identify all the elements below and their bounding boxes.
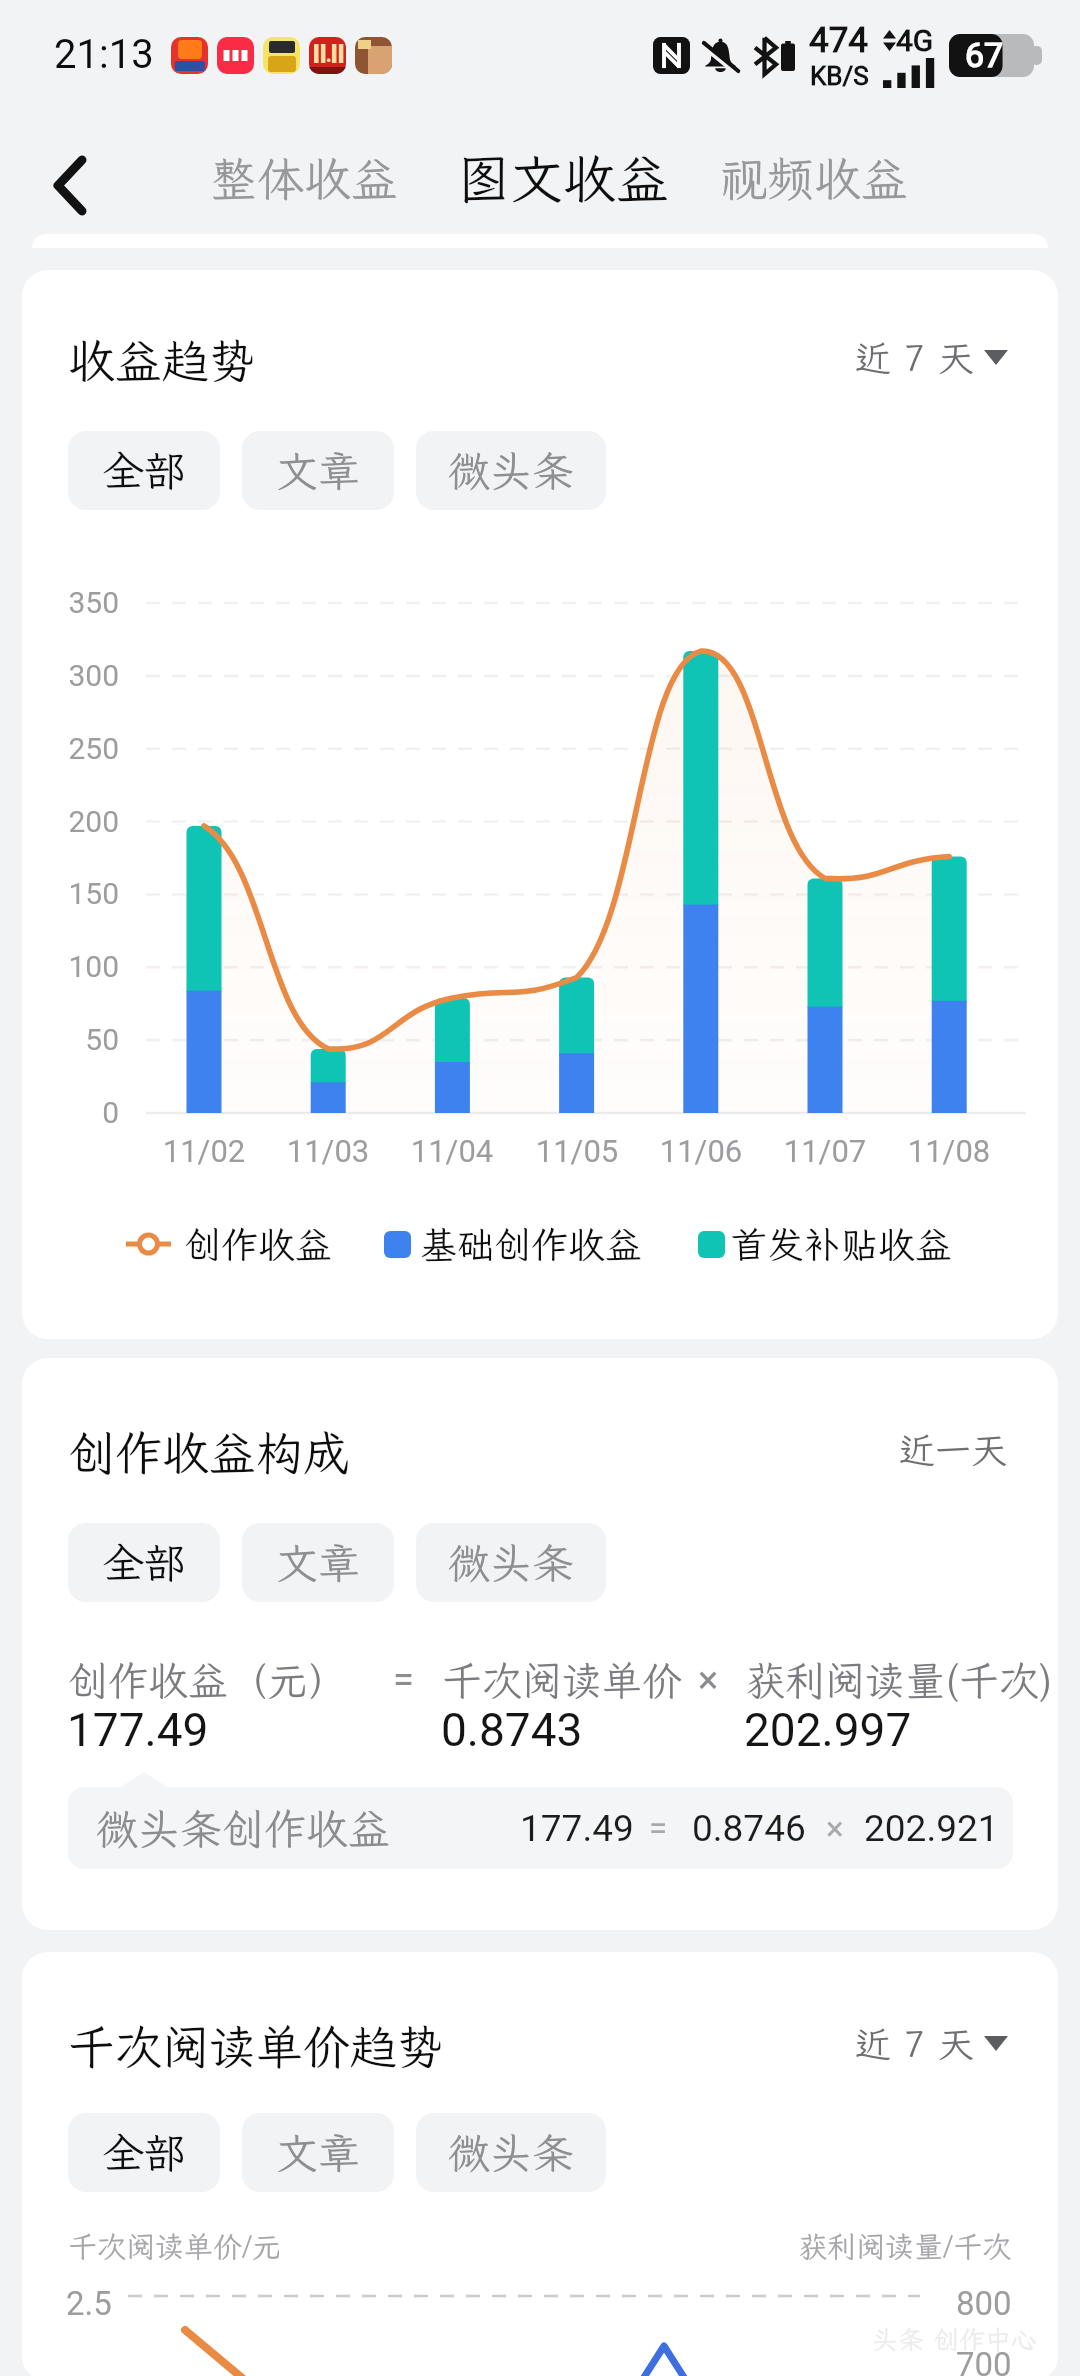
button[interactable]: 图文收益 <box>438 135 688 220</box>
button[interactable]: 近一天 <box>893 1423 1014 1482</box>
staticText: 微头条创作收益 <box>96 1801 391 1856</box>
staticText: 150 <box>22 876 119 911</box>
staticText: 50 <box>22 1022 119 1057</box>
staticText: 图文收益 <box>457 143 669 213</box>
staticText: 头条 创作中心 <box>872 2322 1038 2356</box>
staticText: 700 <box>956 2345 1012 2376</box>
button[interactable]: 文章 <box>242 431 394 510</box>
staticText: 近 7 天 <box>855 334 974 381</box>
staticText: 202.921 <box>864 1807 999 1850</box>
staticText: 11/02 <box>134 1133 274 1169</box>
staticText: × <box>698 1658 719 1703</box>
staticText: 0 <box>22 1095 119 1130</box>
staticText: 474 <box>809 20 869 61</box>
staticText: 近一天 <box>899 1426 1008 1473</box>
staticText: 创作收益 <box>184 1220 332 1269</box>
staticText: 千次阅读单价/元 <box>68 2227 282 2265</box>
staticText: 千次阅读单价趋势 <box>68 2015 444 2077</box>
staticText: 整体收益 <box>210 147 398 209</box>
staticText: 千次阅读单价 <box>442 1654 682 1707</box>
button[interactable]: 全部 <box>68 1523 220 1602</box>
staticText: 0.8746 <box>692 1807 806 1850</box>
staticText: = <box>393 1658 414 1703</box>
staticText: 创作收益构成 <box>68 1421 350 1483</box>
staticText: 250 <box>22 731 119 766</box>
staticText: 微头条 <box>448 443 575 498</box>
button[interactable]: Back <box>15 130 125 240</box>
staticText: KB/S <box>810 61 869 91</box>
staticText: 获利阅读量(千次) <box>745 1654 1053 1707</box>
staticText: = <box>649 1809 668 1848</box>
button[interactable]: 近 7 天 <box>849 2017 1014 2076</box>
staticText: 全部 <box>102 2125 187 2180</box>
staticText: 文章 <box>276 2125 361 2180</box>
staticText: 视频收益 <box>720 147 908 209</box>
staticText: 11/03 <box>258 1133 398 1169</box>
button[interactable]: 全部 <box>68 2113 220 2192</box>
staticText: 全部 <box>102 443 187 498</box>
button[interactable]: 视频收益 <box>706 140 921 215</box>
staticText: 11/06 <box>631 1133 771 1169</box>
staticText: 基础创作收益 <box>420 1220 642 1269</box>
staticText: 11/08 <box>879 1133 1019 1169</box>
staticText: 300 <box>22 658 119 693</box>
staticText: 0.8743 <box>441 1703 583 1757</box>
staticText: 200 <box>22 804 119 839</box>
staticText: 获利阅读量/千次 <box>798 2227 1012 2265</box>
staticText: 收益趋势 <box>68 329 256 391</box>
staticText: 177.49 <box>520 1807 634 1850</box>
staticText: 21:13 <box>54 31 154 78</box>
staticText: 文章 <box>276 443 361 498</box>
button[interactable]: 文章 <box>242 2113 394 2192</box>
staticText: 202.997 <box>744 1703 912 1757</box>
button[interactable]: 整体收益 <box>196 140 411 215</box>
staticText: 800 <box>956 2284 1012 2323</box>
staticText: 创作收益（元） <box>68 1654 348 1707</box>
staticText: 100 <box>22 949 119 984</box>
staticText: 350 <box>22 585 119 620</box>
staticText: 11/07 <box>755 1133 895 1169</box>
button[interactable]: 微头条创作收益 <box>68 1787 1013 1869</box>
staticText: 近 7 天 <box>855 2020 974 2067</box>
staticText: 67 <box>965 35 1004 75</box>
button[interactable]: 近 7 天 <box>849 331 1014 390</box>
staticText: 2.5 <box>66 2284 112 2323</box>
staticText: 微头条 <box>448 2125 575 2180</box>
button[interactable]: 微头条 <box>416 2113 606 2192</box>
staticText: 177.49 <box>67 1703 209 1757</box>
staticText: 4G <box>896 23 934 58</box>
staticText: 首发补贴收益 <box>730 1220 952 1269</box>
button[interactable]: 文章 <box>242 1523 394 1602</box>
staticText: × <box>826 1809 844 1848</box>
staticText: 全部 <box>102 1535 187 1590</box>
button[interactable]: 全部 <box>68 431 220 510</box>
staticText: 微头条 <box>448 1535 575 1590</box>
staticText: 文章 <box>276 1535 361 1590</box>
button[interactable]: 微头条 <box>416 431 606 510</box>
staticText: 11/04 <box>382 1133 522 1169</box>
staticText: 11/05 <box>507 1133 647 1169</box>
button[interactable]: 微头条 <box>416 1523 606 1602</box>
